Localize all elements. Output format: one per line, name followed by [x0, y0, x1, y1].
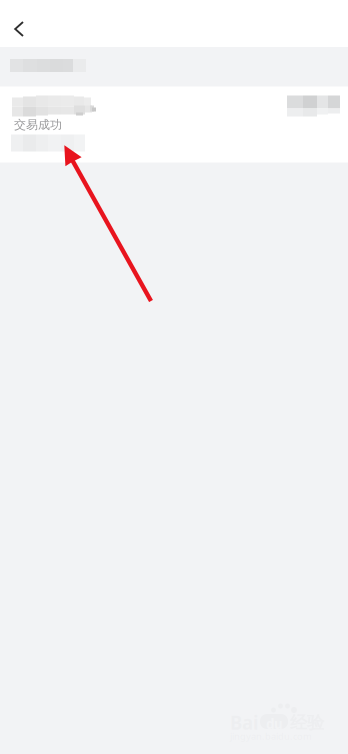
button[interactable]: Back	[0, 0, 46, 47]
staticText: 交易成功	[14, 117, 62, 132]
button[interactable]: 交易成功	[0, 86, 348, 162]
